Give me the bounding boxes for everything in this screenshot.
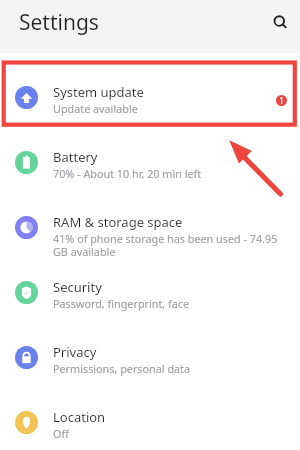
staticText: Permissions, personal data [53,361,191,376]
staticText: Privacy [53,343,97,361]
staticText: System update [53,83,144,101]
button[interactable]: Privacy [0,325,300,390]
staticText: 1 [279,95,284,106]
button[interactable]: Search [268,9,294,35]
staticText: RAM & storage space [53,213,183,231]
staticText: Off [53,426,69,441]
staticText: Update available [53,101,138,116]
button[interactable]: Battery [0,130,300,195]
staticText: 70% - About 10 hr, 20 min left [53,166,202,181]
button[interactable]: System update [0,65,300,130]
staticText: Battery [53,148,98,166]
staticText: Settings [19,8,99,37]
button[interactable]: Location [0,390,300,450]
staticText: 41% of phone storage has been used - 74.… [53,231,284,259]
staticText: Password, fingerprint, face [53,296,190,311]
button[interactable]: RAM & storage space [0,195,300,260]
button[interactable]: Security [0,260,300,325]
staticText: Security [53,278,102,296]
staticText: Location [53,408,106,426]
